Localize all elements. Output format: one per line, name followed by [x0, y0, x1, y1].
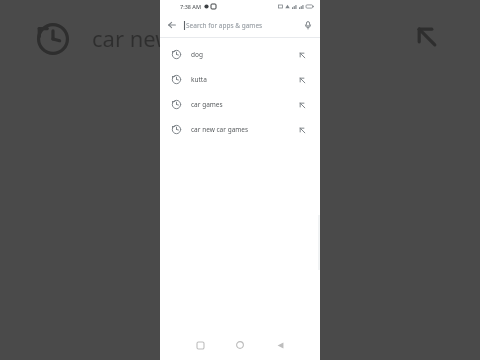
button[interactable]: Insert "car games" into search: [292, 95, 312, 115]
button[interactable]: kutta: [160, 67, 320, 92]
button[interactable]: Insert "kutta" into search: [292, 70, 312, 90]
button[interactable]: Voice search: [296, 13, 320, 37]
button[interactable]: Back: [265, 330, 295, 360]
staticText: 7:38 AM: [180, 3, 202, 10]
button[interactable]: Insert "dog" into search: [292, 45, 312, 65]
button[interactable]: Recent apps: [185, 330, 215, 360]
button[interactable]: car new car games: [160, 117, 320, 142]
button[interactable]: Back: [160, 13, 184, 37]
button[interactable]: car games: [160, 92, 320, 117]
staticText: car new car games: [191, 125, 292, 134]
button[interactable]: Search for apps & games: [184, 13, 296, 37]
button[interactable]: Home: [225, 330, 255, 360]
staticText: Search for apps & games: [186, 21, 263, 30]
staticText: car games: [191, 100, 292, 109]
staticText: car new: [92, 23, 173, 53]
staticText: kutta: [191, 75, 292, 84]
button[interactable]: dog: [160, 42, 320, 67]
staticText: dog: [191, 50, 292, 59]
button[interactable]: Insert "car new car games" into search: [292, 120, 312, 140]
